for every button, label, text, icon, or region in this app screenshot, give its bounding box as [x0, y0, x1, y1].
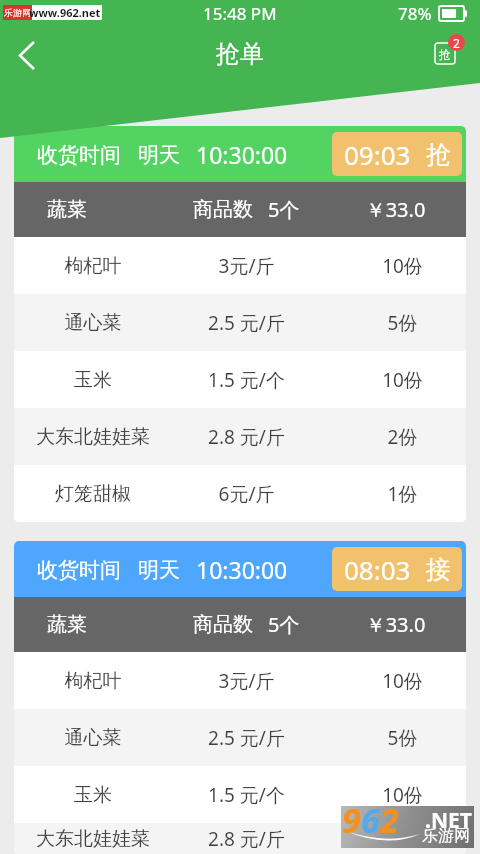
staticText: 抢	[439, 47, 451, 62]
staticText: 商品数	[193, 197, 253, 222]
staticText: 2	[453, 35, 460, 51]
staticText: 5份	[327, 725, 466, 751]
staticText: 10:30:00	[196, 139, 288, 170]
staticText: 1.5 元/个	[171, 367, 322, 393]
staticText: 乐游网	[422, 826, 470, 846]
staticText: 1份	[327, 481, 466, 507]
staticText: 枸杞叶	[18, 669, 168, 693]
staticText: 3元/斤	[171, 668, 322, 694]
staticText: 玉米	[18, 783, 168, 807]
staticText: 明天	[138, 142, 180, 168]
staticText: 2.5 元/斤	[171, 725, 322, 751]
staticText: 6	[361, 797, 380, 839]
staticText: 2份	[327, 424, 466, 450]
staticText: 5个	[268, 611, 300, 638]
staticText: 09:03	[344, 137, 411, 172]
staticText: 大东北娃娃菜	[18, 827, 168, 851]
staticText: 3元/斤	[171, 253, 322, 279]
staticText: 10:30:00	[196, 554, 288, 585]
staticText: 2.5 元/斤	[171, 310, 322, 336]
staticText: www.962.net	[29, 5, 101, 20]
button[interactable]: 返回	[3, 31, 51, 79]
button[interactable]: 通心菜	[14, 294, 466, 351]
staticText: 5份	[327, 310, 466, 336]
staticText: 蔬菜	[47, 197, 164, 222]
staticText: 78%	[398, 2, 432, 25]
staticText: ￥33.0	[320, 196, 466, 223]
staticText: 收货时间	[37, 142, 121, 168]
staticText: 蔬菜	[47, 612, 164, 637]
staticText: 08:03	[344, 552, 411, 587]
staticText: 9	[342, 797, 361, 839]
staticText: 10份	[327, 668, 466, 694]
staticText: 10份	[327, 782, 466, 808]
staticText: 2.8 元/斤	[171, 826, 322, 852]
button[interactable]: 09:03	[332, 132, 462, 176]
button[interactable]: 枸杞叶	[14, 237, 466, 294]
staticText: 接	[426, 554, 451, 585]
staticText: 2.8 元/斤	[171, 424, 322, 450]
staticText: 抢	[426, 139, 451, 170]
staticText: 10份	[327, 253, 466, 279]
staticText: 乐游网	[4, 7, 31, 18]
button[interactable]: 抢单消息	[423, 32, 469, 78]
staticText: 2	[380, 797, 399, 839]
staticText: 1.5 元/个	[171, 782, 322, 808]
staticText: 收货时间	[37, 557, 121, 583]
staticText: 6元/斤	[171, 481, 322, 507]
button[interactable]: 枸杞叶	[14, 652, 466, 709]
button[interactable]: 灯笼甜椒	[14, 465, 466, 522]
button[interactable]: 玉米	[14, 766, 466, 823]
staticText: ￥33.0	[320, 611, 466, 638]
button[interactable]: 大东北娃娃菜	[14, 408, 466, 465]
staticText: 通心菜	[18, 726, 168, 750]
staticText: .NET	[425, 806, 472, 835]
staticText: 2份	[327, 826, 466, 852]
staticText: 枸杞叶	[18, 254, 168, 278]
staticText: 抢单	[216, 39, 264, 69]
staticText: 15:48 PM	[203, 2, 277, 25]
button[interactable]: 收货时间	[14, 541, 466, 854]
staticText: 明天	[138, 557, 180, 583]
button[interactable]: 玉米	[14, 351, 466, 408]
staticText: 10份	[327, 367, 466, 393]
button[interactable]: 通心菜	[14, 709, 466, 766]
staticText: 灯笼甜椒	[18, 482, 168, 506]
button[interactable]: 08:03	[332, 547, 462, 591]
button[interactable]: 收货时间	[14, 126, 466, 522]
staticText: 玉米	[18, 368, 168, 392]
button[interactable]: 大东北娃娃菜	[14, 823, 466, 854]
staticText: 5个	[268, 196, 300, 223]
staticText: 通心菜	[18, 311, 168, 335]
staticText: 商品数	[193, 612, 253, 637]
staticText: 大东北娃娃菜	[18, 425, 168, 449]
